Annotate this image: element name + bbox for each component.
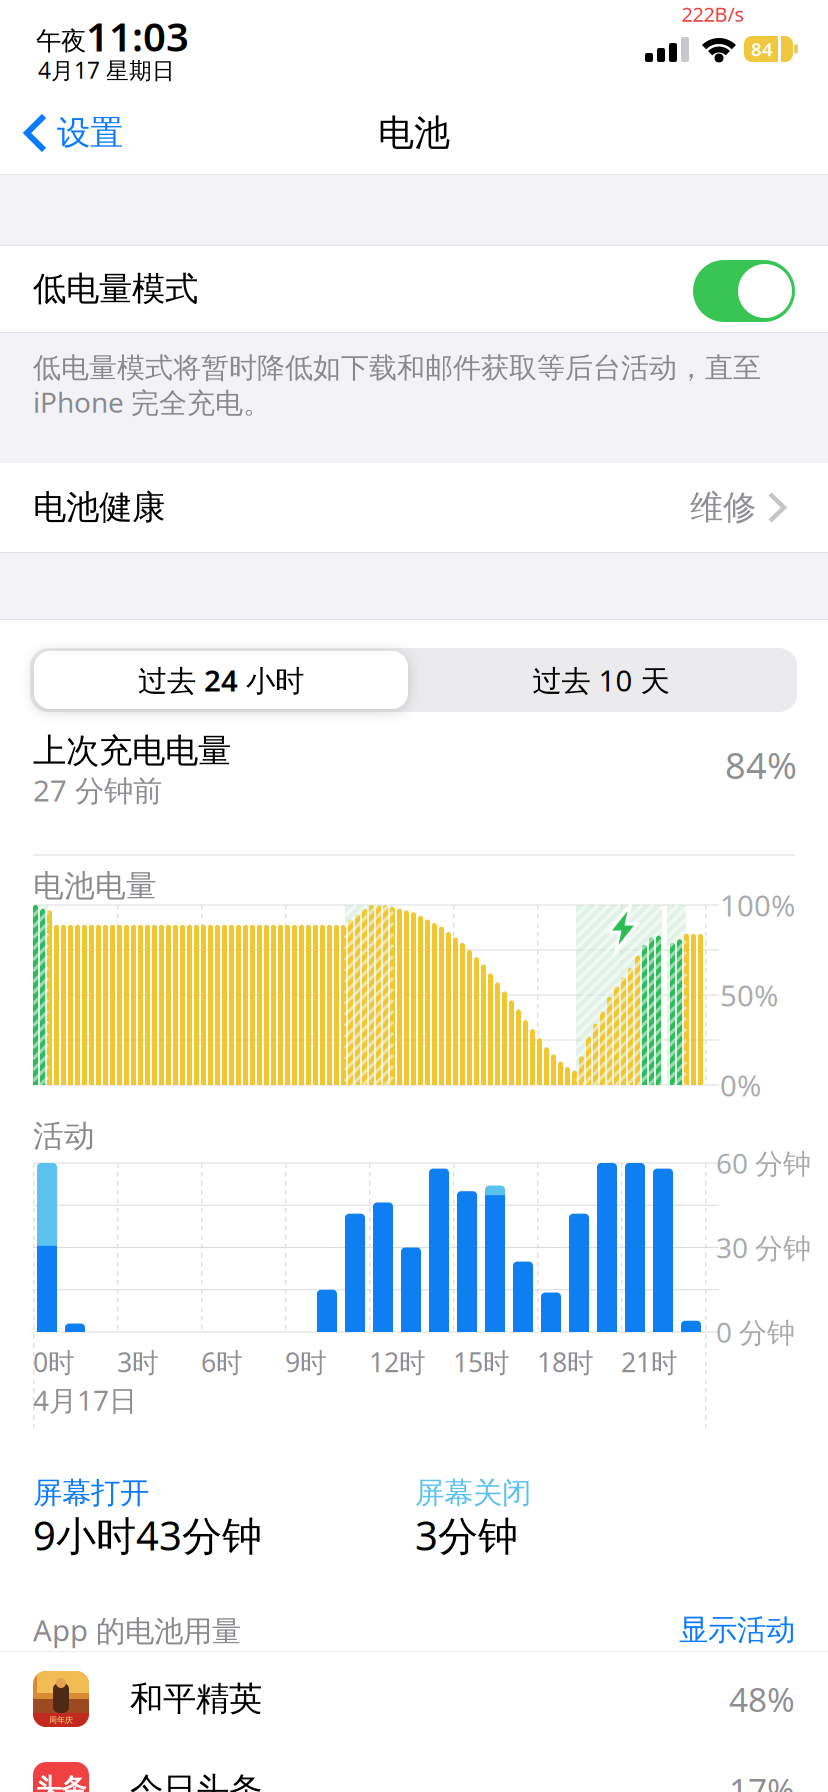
button[interactable]: 过去 24 小时 — [34, 651, 408, 709]
staticText: 设置 — [57, 112, 123, 153]
staticText: 电池电量 — [33, 867, 157, 905]
staticText: 18时 — [537, 1344, 594, 1380]
staticText: 电池 — [378, 111, 450, 155]
staticText: 60 分钟 — [716, 1144, 811, 1182]
staticText: 17% — [729, 1768, 795, 1792]
staticText: 11:03 — [86, 9, 189, 62]
staticText: 电池健康 — [33, 487, 165, 528]
staticText: 222B/s — [681, 1, 744, 27]
staticText: 50% — [720, 975, 778, 1014]
staticText: 84% — [725, 741, 797, 789]
staticText: 21时 — [621, 1344, 678, 1380]
staticText: 12时 — [369, 1344, 426, 1380]
staticText: 周年庆 — [49, 1715, 73, 1725]
staticText: 48% — [729, 1677, 795, 1721]
staticText: 9时 — [285, 1344, 327, 1380]
staticText: 过去 10 天 — [532, 660, 669, 699]
staticText: 屏幕关闭 — [415, 1475, 531, 1511]
staticText: 15时 — [453, 1344, 510, 1380]
staticText: 低电量模式 — [33, 268, 198, 309]
staticText: 30 分钟 — [716, 1229, 811, 1266]
staticText: 0 分钟 — [716, 1313, 795, 1351]
staticText: 100% — [720, 885, 795, 924]
staticText: 午夜 — [36, 25, 86, 56]
staticText: 显示活动 — [679, 1612, 795, 1648]
button[interactable]: 低电量模式开关 — [693, 260, 795, 322]
staticText: 27 分钟前 — [33, 770, 162, 809]
button[interactable]: 返回设置 — [6, 108, 166, 158]
staticText: 3时 — [117, 1344, 159, 1380]
staticText: 屏幕打开 — [33, 1475, 149, 1511]
staticText: 84 — [751, 37, 773, 61]
button[interactable]: 过去 10 天 — [411, 651, 791, 709]
staticText: 过去 24 小时 — [138, 660, 304, 699]
staticText: 上次充电电量 — [33, 730, 231, 771]
button[interactable]: 头条 — [0, 1745, 828, 1792]
staticText: 低电量模式将暂时降低如下载和邮件获取等后台活动，直至 — [33, 351, 761, 385]
button[interactable]: 显示活动 — [595, 1612, 795, 1648]
staticText: iPhone 完全充电。 — [33, 383, 271, 421]
staticText: 0% — [720, 1065, 761, 1104]
staticText: 4月17日 — [33, 1381, 137, 1419]
staticText: 0时 — [33, 1344, 75, 1380]
staticText: 今日头条 — [130, 1769, 262, 1792]
button[interactable]: 电池健康 — [0, 463, 828, 552]
staticText: 9小时43分钟 — [33, 1508, 262, 1561]
staticText: 活动 — [33, 1117, 95, 1155]
staticText: 3分钟 — [415, 1508, 518, 1561]
staticText: 4月17 星期日 — [38, 55, 175, 85]
staticText: 和平精英 — [130, 1678, 262, 1719]
button[interactable]: 周年庆 — [0, 1652, 828, 1746]
staticText: 头条 — [36, 1772, 86, 1792]
staticText: App 的电池用量 — [33, 1610, 241, 1649]
staticText: 6时 — [201, 1344, 243, 1380]
staticText: 维修 — [690, 487, 756, 528]
